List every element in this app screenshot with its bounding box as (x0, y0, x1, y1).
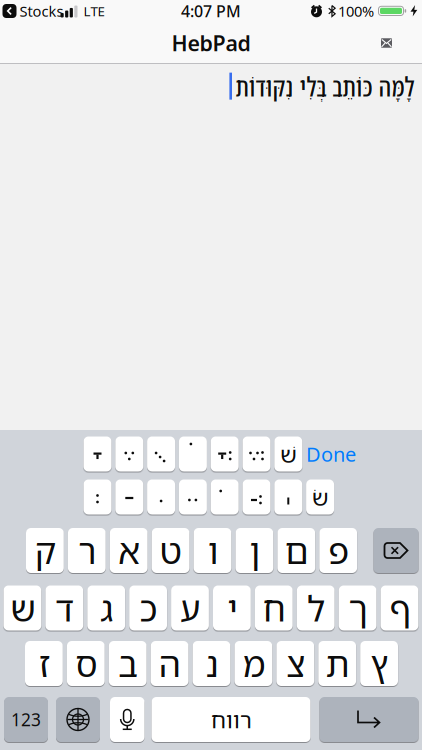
staticText: ר (78, 527, 96, 574)
button[interactable]: ט (152, 528, 189, 573)
staticText: ג (100, 584, 113, 631)
button[interactable]: meteg (274, 479, 302, 514)
button[interactable]: ל (297, 585, 335, 630)
button[interactable]: tsere (179, 479, 207, 514)
button[interactable]: sin dot (306, 479, 334, 514)
button[interactable]: ף (381, 585, 418, 630)
button[interactable]: ק (26, 528, 64, 573)
button[interactable]: hataf patach (242, 479, 270, 514)
button[interactable]: holam (179, 436, 207, 471)
staticText: ש (10, 584, 35, 631)
button[interactable]: Send as mail (381, 38, 392, 48)
button[interactable]: Numbers (4, 697, 48, 742)
staticText: כ (139, 584, 157, 631)
staticText: 123 (11, 708, 41, 731)
button[interactable]: ח (255, 585, 293, 630)
staticText: י (227, 584, 237, 631)
staticText: שׁ (280, 439, 297, 469)
staticText: 100% (338, 1, 374, 21)
button[interactable]: ע (171, 585, 209, 630)
button[interactable]: ה (151, 641, 188, 686)
button[interactable]: ז (25, 641, 63, 686)
button[interactable]: ב (109, 641, 147, 686)
staticText: ק (34, 527, 56, 574)
button[interactable]: נ (193, 641, 230, 686)
button[interactable]: צ (276, 641, 314, 686)
button[interactable]: מ (234, 641, 272, 686)
staticText: ף (389, 584, 410, 631)
staticText: ח (262, 584, 285, 631)
button[interactable]: patach (115, 479, 143, 514)
button[interactable]: פ (319, 528, 357, 573)
button[interactable]: Return (319, 697, 418, 742)
button[interactable]: shva (83, 479, 111, 514)
button[interactable]: Space (151, 697, 310, 742)
staticText: ת (325, 640, 349, 687)
staticText: ז (38, 640, 49, 687)
button[interactable]: כ (129, 585, 167, 630)
staticText: שׂ (312, 482, 329, 512)
staticText: ס (75, 640, 97, 687)
button[interactable]: א (110, 528, 148, 573)
button[interactable]: Delete (373, 528, 418, 573)
staticText: מ (242, 640, 265, 687)
button[interactable]: ך (339, 585, 376, 630)
staticText: ד (55, 584, 74, 631)
button[interactable]: ג (87, 585, 125, 630)
button[interactable]: shin dot (274, 436, 302, 471)
staticText: ך (348, 584, 367, 631)
button[interactable]: ר (68, 528, 106, 573)
button[interactable]: ן (235, 528, 273, 573)
staticText: Done (306, 441, 356, 467)
staticText: HebPad (171, 29, 250, 57)
staticText: ע (179, 584, 200, 631)
button[interactable]: Done (306, 441, 356, 467)
staticText: א (118, 527, 140, 574)
button[interactable]: ש (3, 585, 41, 630)
button[interactable]: ם (277, 528, 315, 573)
staticText: ץ (370, 640, 388, 687)
staticText: צ (286, 640, 305, 687)
button[interactable]: י (213, 585, 251, 630)
staticText: נ (205, 640, 218, 687)
staticText: רווח (210, 704, 251, 735)
button[interactable]: qamats (83, 436, 111, 471)
staticText: ט (160, 527, 182, 574)
staticText: ו (207, 527, 217, 574)
staticText: ן (249, 527, 260, 574)
staticText: 4:07 PM (181, 0, 241, 22)
button[interactable]: Next keyboard (56, 697, 100, 742)
button[interactable]: ץ (360, 641, 398, 686)
staticText: ם (284, 527, 308, 574)
button[interactable]: ת (318, 641, 356, 686)
staticText: ב (118, 640, 138, 687)
button[interactable]: segol (115, 436, 143, 471)
staticText: LTE (83, 2, 104, 20)
button[interactable]: ס (67, 641, 105, 686)
button[interactable]: hiriq (147, 479, 175, 514)
staticText: פ (328, 527, 349, 574)
button[interactable]: Back to Stocks (2, 1, 63, 21)
button[interactable]: qubuts (147, 436, 175, 471)
staticText: Stocks (19, 1, 63, 21)
staticText: ה (159, 640, 181, 687)
button[interactable]: hataf qamats (211, 436, 239, 471)
button[interactable]: ד (45, 585, 83, 630)
button[interactable]: Dictate (110, 697, 144, 742)
button[interactable]: dagesh (211, 479, 239, 514)
button[interactable]: ו (194, 528, 231, 573)
button[interactable]: hataf segol (242, 436, 270, 471)
staticText: ל (307, 584, 325, 631)
staticText: לָמָּה כּוֹתֵב בְּלִי נִקּוּדוֹת (235, 68, 414, 104)
